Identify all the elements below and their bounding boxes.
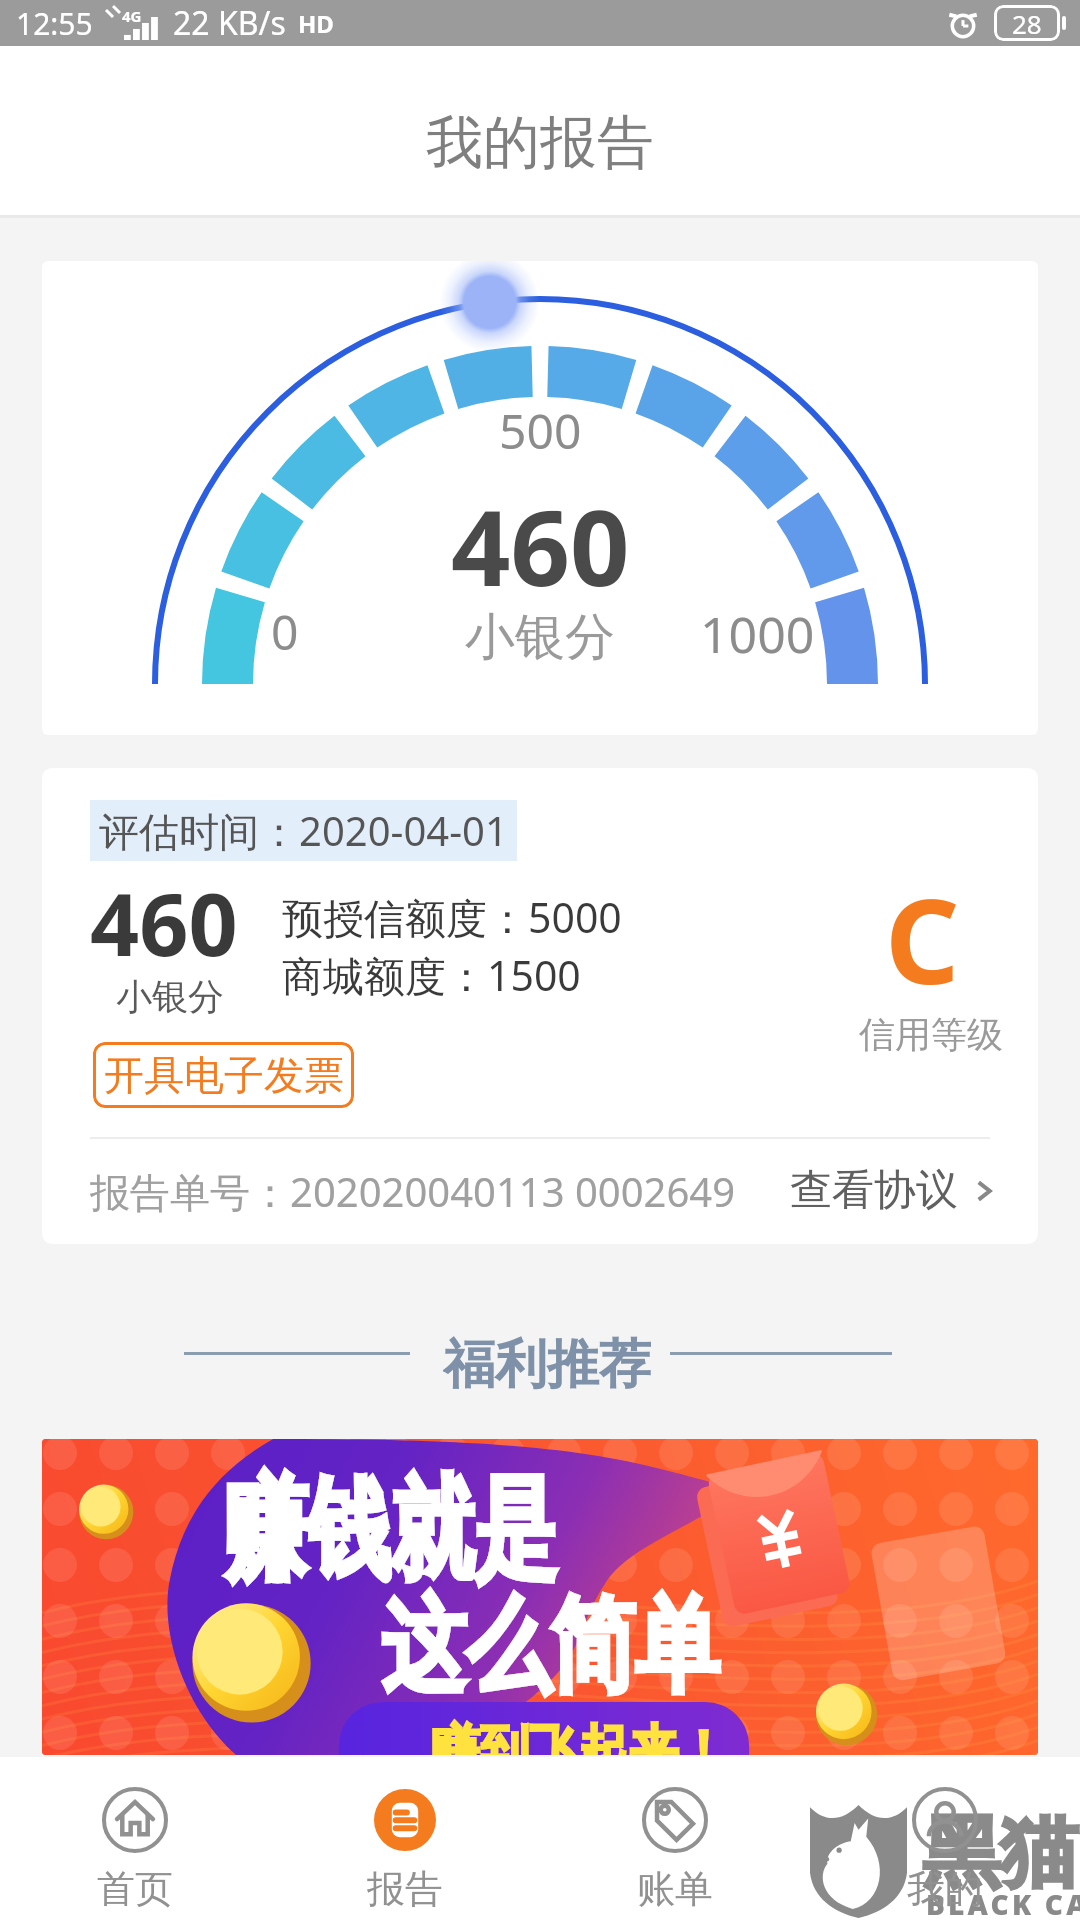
- staticText: 我的: [907, 1865, 983, 1913]
- button[interactable]: 开具电子发票: [93, 1042, 354, 1108]
- staticText: 0: [271, 599, 299, 664]
- button[interactable]: 我的: [810, 1757, 1080, 1920]
- staticText: 开具电子发票: [104, 1050, 344, 1100]
- staticText: 28: [1012, 6, 1042, 41]
- staticText: 首页: [97, 1865, 173, 1913]
- staticText: 460: [451, 475, 630, 617]
- staticText: 4G: [122, 6, 142, 26]
- button[interactable]: 查看协议: [790, 1164, 996, 1217]
- staticText: 赚钱就是: [223, 1460, 557, 1601]
- staticText: 12:55: [16, 3, 93, 44]
- staticText: 商城额度：1500: [282, 947, 581, 1003]
- button[interactable]: 账单: [540, 1757, 810, 1920]
- button[interactable]: 报告: [270, 1757, 540, 1920]
- staticText: 信用等级: [859, 1012, 1003, 1057]
- staticText: 赚到飞起来！: [430, 1716, 728, 1755]
- staticText: 我的报告: [426, 107, 654, 179]
- staticText: HD: [298, 7, 334, 40]
- staticText: 460: [90, 864, 238, 981]
- staticText: 福利推荐: [443, 1332, 651, 1390]
- staticText: 22 KB/s: [173, 1, 286, 45]
- staticText: 账单: [637, 1865, 713, 1913]
- staticText: 小银分: [465, 606, 615, 669]
- button[interactable]: 赚钱就是: [42, 1439, 1038, 1755]
- staticText: 报告单号：202020040113 0002649: [90, 1164, 736, 1219]
- button[interactable]: 首页: [0, 1757, 270, 1920]
- staticText: 500: [499, 398, 582, 463]
- staticText: BLACK CAT: [926, 1885, 1080, 1920]
- staticText: 预授信额度：5000: [282, 889, 622, 945]
- staticText: C: [885, 860, 960, 1018]
- staticText: 报告: [367, 1865, 443, 1913]
- staticText: 评估时间：2020-04-01: [99, 803, 508, 858]
- staticText: 1000: [700, 600, 815, 668]
- staticText: 这么简单: [381, 1582, 719, 1712]
- staticText: 黑猫: [922, 1804, 1078, 1902]
- staticText: 查看协议: [790, 1164, 958, 1217]
- staticText: 小银分: [116, 974, 224, 1019]
